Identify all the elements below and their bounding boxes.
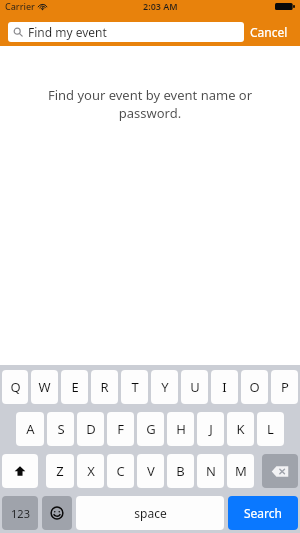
staticText: 2:03 AM — [143, 0, 178, 12]
staticText: E — [71, 378, 79, 396]
button[interactable]: W — [31, 370, 58, 404]
button[interactable]: Z — [46, 454, 74, 488]
button[interactable]: N — [197, 454, 224, 488]
button[interactable]: O — [241, 370, 268, 404]
staticText: Q — [10, 378, 21, 396]
staticText: P — [281, 378, 289, 396]
staticText: M — [235, 462, 247, 480]
button[interactable]: S — [47, 412, 74, 446]
button[interactable]: F — [107, 412, 134, 446]
button[interactable]: J — [197, 412, 224, 446]
button[interactable]: Cancel — [244, 20, 294, 44]
button[interactable]: Q — [2, 370, 28, 404]
button[interactable]: Emoji — [42, 496, 72, 530]
staticText: 123 — [11, 506, 30, 521]
button[interactable]: space — [76, 496, 224, 530]
staticText: B — [176, 462, 185, 480]
staticText: F — [117, 420, 124, 438]
staticText: V — [147, 462, 155, 480]
button[interactable]: Search — [228, 496, 298, 530]
button[interactable]: V — [137, 454, 164, 488]
button[interactable]: T — [121, 370, 148, 404]
button[interactable]: I — [211, 370, 238, 404]
button[interactable]: Shift — [2, 454, 38, 488]
staticText: Cancel — [250, 24, 288, 40]
staticText: O — [249, 378, 260, 396]
button[interactable]: U — [181, 370, 208, 404]
staticText: R — [100, 378, 109, 396]
staticText: C — [116, 462, 125, 480]
button[interactable]: L — [257, 412, 284, 446]
button[interactable]: K — [227, 412, 254, 446]
staticText: G — [146, 420, 156, 438]
button[interactable]: Backspace — [262, 454, 298, 488]
button[interactable]: X — [77, 454, 104, 488]
button[interactable]: H — [167, 412, 194, 446]
button[interactable]: Find my event — [8, 22, 244, 42]
staticText: N — [206, 462, 216, 480]
staticText: H — [176, 420, 186, 438]
staticText: U — [190, 378, 200, 396]
button[interactable]: B — [167, 454, 194, 488]
staticText: X — [87, 462, 95, 480]
staticText: Search — [244, 505, 282, 521]
staticText: T — [131, 378, 139, 396]
staticText: Z — [56, 462, 64, 480]
staticText: Find your event by event name or passwor… — [18, 86, 282, 122]
staticText: space — [134, 505, 167, 521]
button[interactable]: G — [137, 412, 164, 446]
staticText: S — [57, 420, 65, 438]
staticText: Y — [161, 378, 169, 396]
staticText: W — [38, 378, 51, 396]
staticText: I — [222, 378, 227, 396]
staticText: D — [86, 420, 96, 438]
staticText: K — [236, 420, 245, 438]
button[interactable]: P — [271, 370, 298, 404]
staticText: Find my event — [28, 24, 107, 40]
button[interactable]: M — [227, 454, 254, 488]
staticText: J — [209, 420, 213, 438]
button[interactable]: D — [77, 412, 104, 446]
button[interactable]: R — [91, 370, 118, 404]
button[interactable]: E — [61, 370, 88, 404]
staticText: L — [267, 420, 274, 438]
button[interactable]: 123 — [2, 496, 38, 530]
button[interactable]: A — [16, 412, 44, 446]
staticText: Carrier — [5, 0, 35, 12]
button[interactable]: Y — [151, 370, 178, 404]
button[interactable]: C — [107, 454, 134, 488]
staticText: A — [26, 420, 35, 438]
